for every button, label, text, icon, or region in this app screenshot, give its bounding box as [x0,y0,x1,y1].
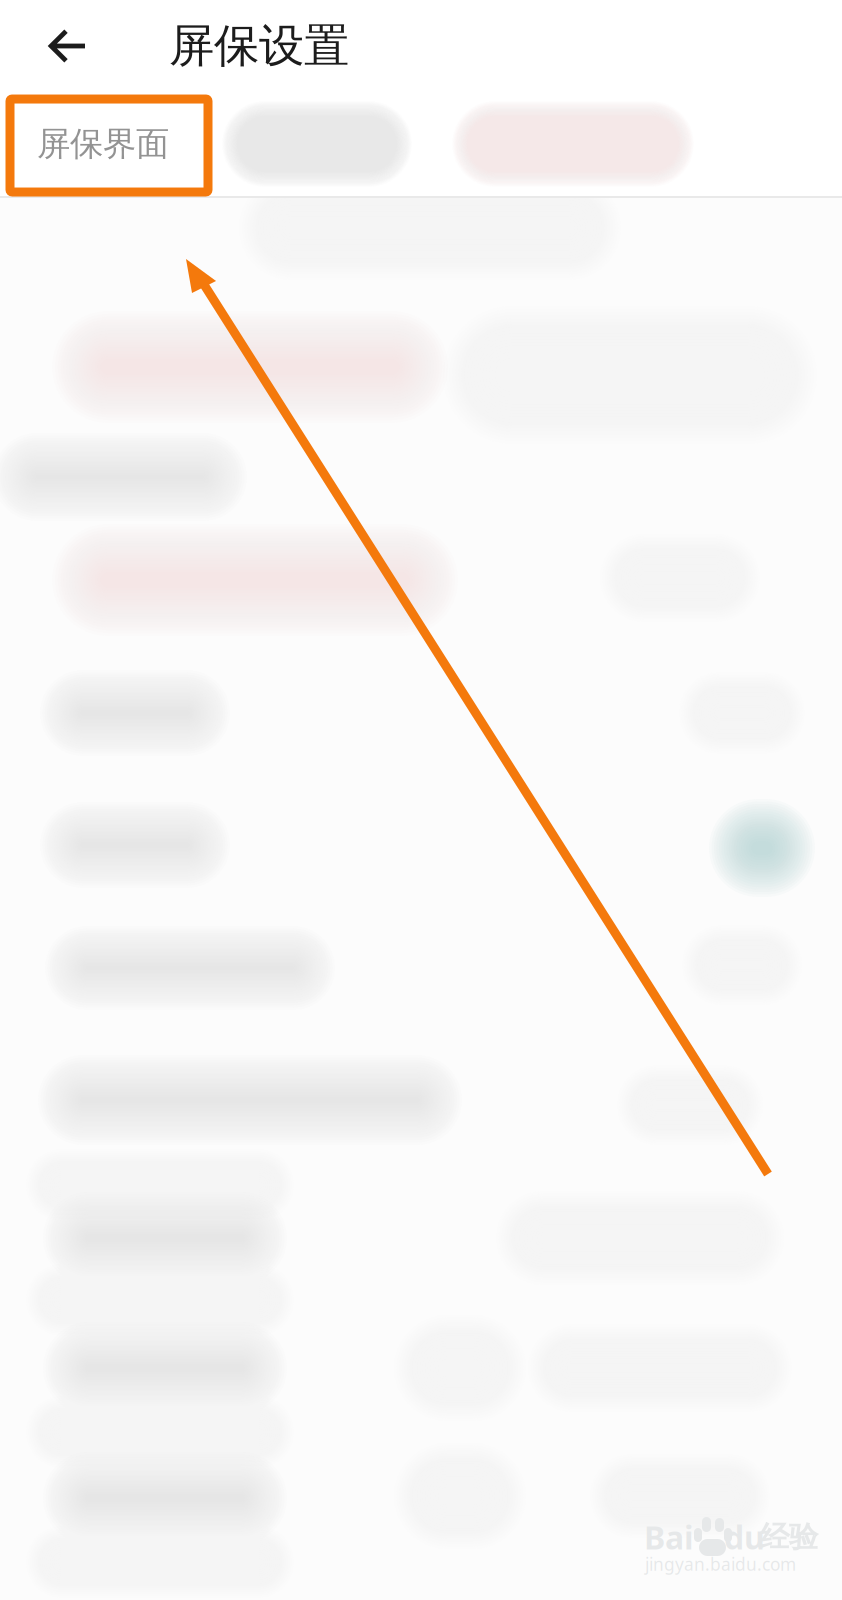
staticText: Bai [644,1516,694,1558]
staticText: jingyan.baidu.com [645,1552,796,1575]
button[interactable]: Back [0,0,136,92]
staticText: du [724,1516,765,1558]
button[interactable]: 屏保界面 [0,93,206,195]
staticText: 经验 [760,1519,818,1555]
staticText: 屏保设置 [169,18,349,74]
staticText: 屏保界面 [37,123,169,164]
